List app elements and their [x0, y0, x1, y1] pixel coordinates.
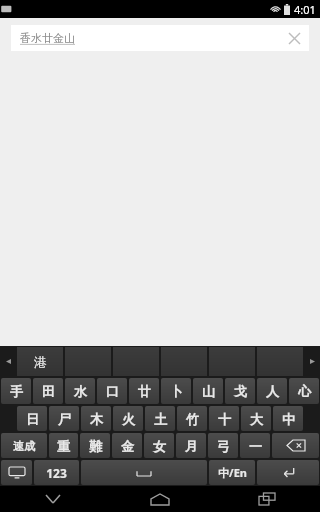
staticText: 十	[218, 411, 231, 427]
staticText: 手	[10, 383, 23, 399]
button[interactable]: 大	[241, 406, 271, 431]
button[interactable]: 口	[97, 378, 127, 404]
staticText: 水	[74, 383, 87, 399]
staticText: 大	[250, 411, 263, 427]
button[interactable]: 廿	[129, 378, 159, 404]
button[interactable]: 123	[34, 460, 79, 485]
button[interactable]: 尸	[49, 406, 79, 431]
staticText: 山	[202, 383, 215, 399]
staticText: 香水廿金山	[20, 31, 75, 45]
staticText: 月	[185, 438, 198, 454]
button[interactable]: 戈	[225, 378, 255, 404]
button[interactable]: 女	[144, 433, 174, 458]
staticText: 弓	[217, 438, 230, 454]
other: Input method	[0, 3, 12, 15]
button[interactable]: 中/En	[209, 460, 255, 485]
button[interactable]: Backspace	[272, 433, 319, 458]
staticText: 速成	[13, 439, 35, 453]
button[interactable]: More candidates	[304, 346, 320, 377]
button[interactable]: 重	[49, 433, 78, 458]
button[interactable]: 木	[81, 406, 111, 431]
button[interactable]: 金	[112, 433, 142, 458]
button[interactable]: 香水廿金山	[11, 25, 309, 51]
staticText: 中/En	[218, 465, 247, 480]
button[interactable]: 水	[65, 378, 95, 404]
staticText: 女	[153, 438, 166, 454]
staticText: 尸	[58, 411, 71, 427]
button[interactable]: Home	[106, 486, 213, 512]
staticText: 金	[121, 438, 134, 454]
button[interactable]: 田	[33, 378, 63, 404]
button[interactable]: Space	[81, 460, 207, 485]
staticText: 口	[106, 383, 119, 399]
button[interactable]: 心	[289, 378, 319, 404]
staticText: 日	[26, 411, 39, 427]
button[interactable]: Switch keyboard	[1, 460, 32, 485]
staticText: 難	[89, 438, 102, 454]
staticText: 心	[298, 383, 311, 399]
button[interactable]: Previous candidates	[0, 346, 16, 377]
staticText: 中	[282, 411, 295, 427]
button[interactable]: Hide keyboard	[0, 486, 106, 512]
button[interactable]: 難	[80, 433, 110, 458]
button[interactable]: 竹	[177, 406, 207, 431]
staticText: 一	[249, 438, 262, 454]
button[interactable]: 手	[1, 378, 31, 404]
button[interactable]: 火	[113, 406, 143, 431]
button[interactable]: 一	[240, 433, 270, 458]
staticText: 田	[42, 383, 55, 399]
staticText: 木	[90, 411, 103, 427]
button[interactable]: 十	[209, 406, 239, 431]
button[interactable]: 日	[17, 406, 47, 431]
button[interactable]: Recent apps	[213, 486, 320, 512]
staticText: 123	[46, 465, 67, 481]
staticText: 人	[266, 383, 279, 399]
staticText: 火	[122, 411, 135, 427]
staticText: 廿	[138, 383, 151, 399]
button[interactable]: 人	[257, 378, 287, 404]
button[interactable]: 港	[17, 347, 63, 376]
button[interactable]: Clear	[284, 28, 304, 48]
staticText: 港	[34, 354, 47, 370]
staticText: 卜	[170, 383, 183, 399]
button[interactable]: 山	[193, 378, 223, 404]
staticText: 戈	[234, 383, 247, 399]
staticText: 土	[154, 411, 167, 427]
staticText: 竹	[186, 411, 199, 427]
button[interactable]: 卜	[161, 378, 191, 404]
button[interactable]: 弓	[208, 433, 238, 458]
button[interactable]: 土	[145, 406, 175, 431]
staticText: 4:01	[294, 2, 316, 17]
button[interactable]: 月	[176, 433, 206, 458]
staticText: 重	[57, 438, 70, 454]
button[interactable]: Enter	[257, 460, 319, 485]
button[interactable]: 中	[273, 406, 303, 431]
button[interactable]: 速成	[1, 433, 47, 458]
